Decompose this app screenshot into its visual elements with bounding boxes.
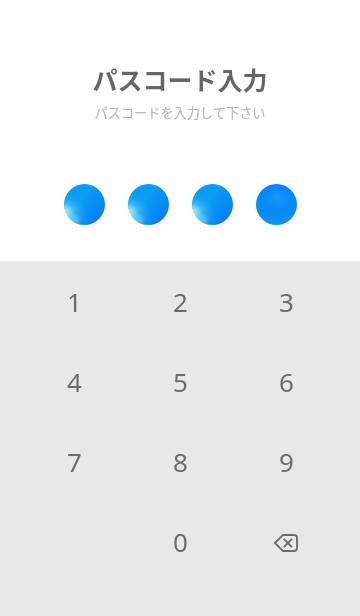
- button[interactable]: Backspace: [233, 501, 339, 581]
- staticText: 2: [173, 284, 188, 319]
- button[interactable]: 1: [21, 261, 127, 341]
- button[interactable]: 3: [233, 261, 339, 341]
- staticText: 7: [67, 444, 82, 479]
- button[interactable]: 6: [233, 341, 339, 421]
- staticText: 1: [67, 284, 82, 319]
- button[interactable]: 8: [127, 421, 233, 501]
- button[interactable]: 2: [127, 261, 233, 341]
- staticText: 9: [279, 444, 294, 479]
- button[interactable]: 4: [21, 341, 127, 421]
- staticText: 8: [173, 444, 188, 479]
- button[interactable]: 5: [127, 341, 233, 421]
- button[interactable]: 9: [233, 421, 339, 501]
- staticText: 3: [279, 284, 294, 319]
- staticText: パスコード入力: [92, 61, 268, 97]
- other: Backspace: [274, 534, 298, 552]
- button[interactable]: 7: [21, 421, 127, 501]
- staticText: 6: [279, 364, 294, 399]
- staticText: 5: [173, 364, 188, 399]
- staticText: 4: [67, 364, 82, 399]
- staticText: 0: [173, 524, 188, 559]
- button[interactable]: 0: [127, 501, 233, 581]
- staticText: パスコードを入力して下さい: [94, 103, 266, 122]
